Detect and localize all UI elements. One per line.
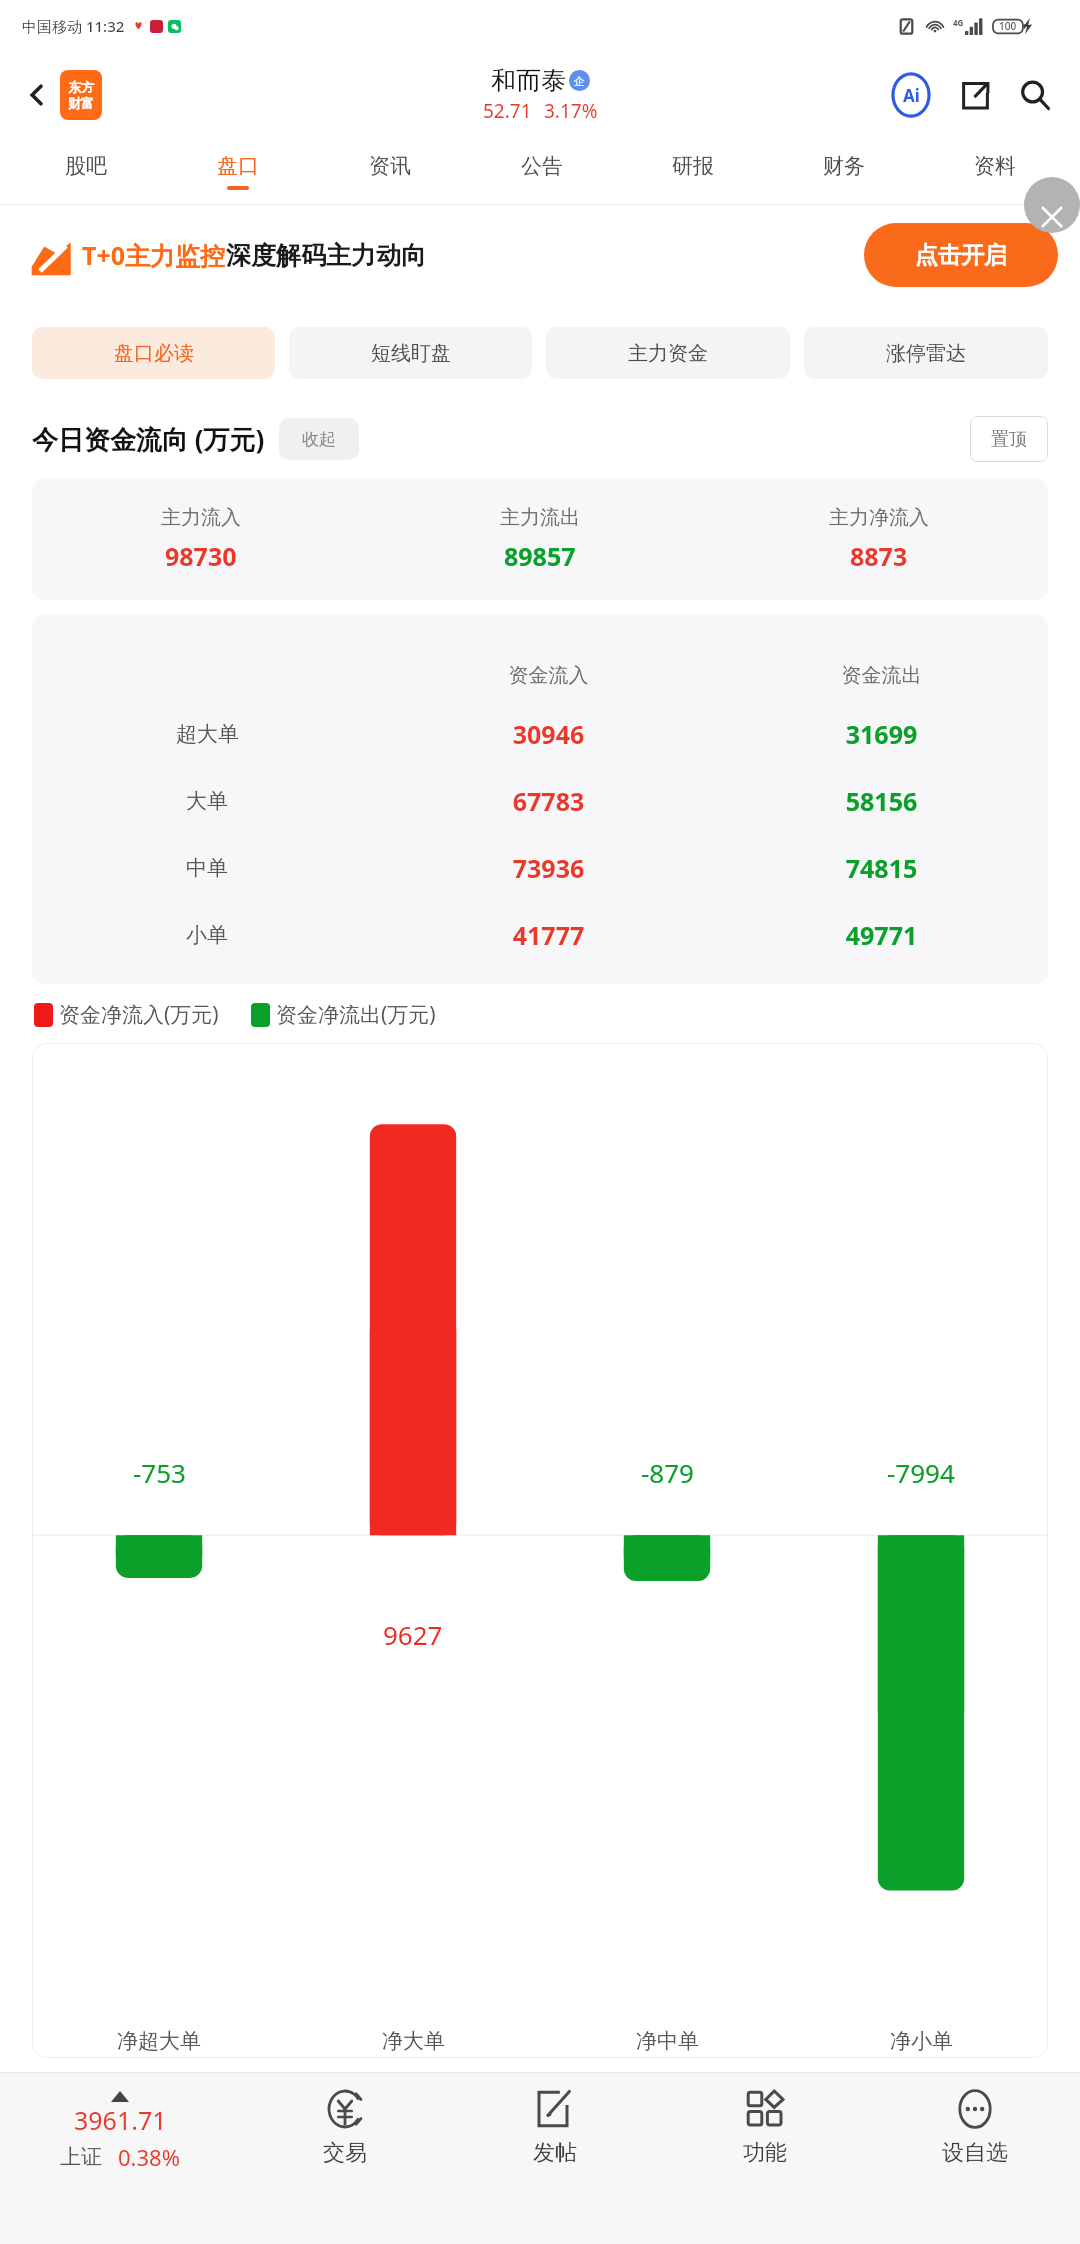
button[interactable]: 公告 [466,137,617,205]
staticText: 0.38% [118,2142,180,2172]
button[interactable]: 股吧 [10,137,162,205]
staticText: 股吧 [65,153,107,179]
staticText: 89857 [504,539,576,573]
staticText: 主力流出 [500,505,580,530]
staticText: 73936 [382,851,715,885]
staticText: -879 [641,1455,694,1490]
button[interactable]: 发帖 [450,2073,660,2244]
staticText: 发帖 [533,2139,577,2167]
staticText: 100 [999,19,1017,33]
staticText: Ai [903,84,920,107]
button[interactable]: 涨停雷达 [804,327,1048,379]
staticText: 东方 [68,79,94,95]
staticText: T+0主力监控 [82,238,226,272]
staticText: 盘口 [217,153,259,179]
staticText: 资金流入 [382,663,715,688]
staticText: 短线盯盘 [371,341,451,366]
staticText: 今日资金流向 (万元) [32,421,265,457]
staticText: 财富 [68,95,94,111]
staticText: 净小单 [890,2028,953,2054]
staticText: 涨停雷达 [886,341,966,366]
staticText: 中单 [186,855,228,881]
staticText: 49771 [715,918,1048,952]
staticText: 功能 [743,2139,787,2167]
button[interactable]: 短线盯盘 [289,327,532,379]
staticText: 置顶 [991,428,1027,451]
staticText: 盘口必读 [114,341,194,366]
button[interactable]: 置顶 [970,416,1048,462]
staticText: 主力资金 [628,341,708,366]
button[interactable]: 3961.71 [0,2073,240,2244]
staticText: 深度解码主力动向 [226,240,426,271]
staticText: 资金净流入(万元) [59,1000,219,1029]
button[interactable]: 东方财富 [60,70,102,120]
staticText: 3.17% [544,98,598,124]
staticText: 上证 [60,2144,102,2170]
staticText: 净超大单 [117,2028,201,2054]
staticText: 公告 [521,153,563,179]
button[interactable]: 资料 [919,137,1070,205]
staticText: 9627 [383,1617,443,1652]
staticText: 资讯 [369,153,411,179]
staticText: 74815 [715,851,1048,885]
staticText: 财务 [823,153,865,179]
staticText: 中国移动 11:32 [22,16,125,36]
button[interactable]: 研报 [617,137,768,205]
button[interactable]: Search [1008,68,1062,122]
staticText: 小单 [186,922,228,948]
button[interactable]: 点击开启 [864,223,1058,287]
button[interactable]: 设自选 [870,2073,1080,2244]
staticText: 资料 [974,153,1016,179]
staticText: 30946 [382,717,715,751]
button[interactable]: 交易 [240,2073,450,2244]
staticText: -7994 [887,1455,955,1490]
staticText: 3961.71 [74,2103,167,2137]
staticText: 主力净流入 [829,505,929,530]
button[interactable]: 资讯 [314,137,466,205]
button[interactable]: Share [948,68,1002,122]
staticText: 资金净流出(万元) [276,1000,436,1029]
staticText: 4G [953,17,964,28]
button[interactable]: 主力资金 [546,327,790,379]
staticText: 主力流入 [161,505,241,530]
button[interactable]: 盘口必读 [32,327,275,379]
button[interactable]: Back [14,72,60,118]
staticText: 资金流出 [715,663,1048,688]
staticText: 58156 [715,784,1048,818]
staticText: 净中单 [636,2028,699,2054]
button[interactable]: 财务 [768,137,919,205]
button[interactable]: AI [884,68,938,122]
staticText: 点击开启 [915,241,1007,270]
staticText: 交易 [323,2139,367,2167]
staticText: 净大单 [382,2028,445,2054]
staticText: 8873 [850,539,908,573]
staticText: 67783 [382,784,715,818]
staticText: 超大单 [176,721,239,747]
button[interactable]: 盘口 [162,137,314,205]
staticText: 和而泰 [491,65,566,96]
staticText: 52.71 [483,98,532,124]
staticText: 98730 [165,539,237,573]
button[interactable]: Close [1024,177,1080,233]
button[interactable]: 收起 [279,418,359,460]
staticText: 41777 [382,918,715,952]
staticText: 企 [574,74,585,88]
staticText: 31699 [715,717,1048,751]
staticText: -753 [133,1455,186,1490]
staticText: 研报 [672,153,714,179]
staticText: 大单 [186,788,228,814]
staticText: 设自选 [942,2139,1008,2167]
staticText: 收起 [302,429,336,450]
button[interactable]: 功能 [660,2073,870,2244]
